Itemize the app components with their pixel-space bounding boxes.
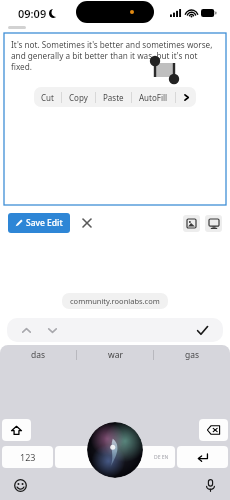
staticText: DE EN xyxy=(154,454,169,461)
button[interactable]: community.roonlabs.com xyxy=(70,296,160,306)
button[interactable]: Shift xyxy=(2,419,31,441)
staticText: AutoFill xyxy=(139,92,168,103)
button[interactable]: Save Edit xyxy=(15,213,63,233)
button[interactable]: Emoji xyxy=(10,475,30,495)
button[interactable]: gas xyxy=(154,345,230,365)
button[interactable]: Cut xyxy=(41,87,54,107)
button[interactable]: DE EN xyxy=(55,446,175,468)
button[interactable]: Copy xyxy=(69,87,88,107)
button[interactable]: Insert image xyxy=(183,215,200,232)
button[interactable]: Preview xyxy=(205,215,222,232)
staticText: Paste xyxy=(103,92,124,103)
staticText: 123 xyxy=(20,451,36,463)
button[interactable]: Next field xyxy=(43,321,61,339)
staticText: Copy xyxy=(69,92,88,103)
button[interactable]: das xyxy=(0,345,76,365)
button[interactable]: Return xyxy=(177,446,228,468)
staticText: Cut xyxy=(41,92,54,103)
button[interactable]: Paste xyxy=(103,87,124,107)
button[interactable]: 123 xyxy=(2,446,53,468)
staticText: Save Edit xyxy=(26,217,63,229)
button[interactable]: Done xyxy=(193,321,211,339)
staticText: community.roonlabs.com xyxy=(70,296,160,306)
button[interactable]: Backspace xyxy=(199,419,228,441)
button[interactable]: Previous field xyxy=(17,321,35,339)
staticText: das xyxy=(31,349,46,361)
button[interactable]: Dictate xyxy=(200,475,220,495)
button[interactable]: war xyxy=(77,345,153,365)
staticText: war xyxy=(108,349,123,361)
staticText: gas xyxy=(185,349,200,361)
button[interactable]: Cancel xyxy=(78,214,96,232)
button[interactable]: AutoFill xyxy=(139,87,168,107)
staticText: 09:09 xyxy=(18,6,47,21)
staticText: It's not. Sometimes it's better and some… xyxy=(11,39,219,72)
button[interactable]: Siri xyxy=(87,422,143,478)
button[interactable]: More xyxy=(176,87,196,107)
